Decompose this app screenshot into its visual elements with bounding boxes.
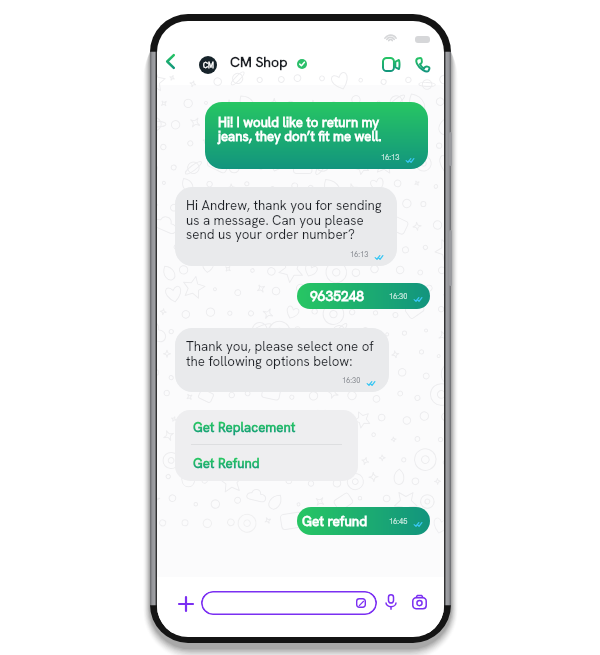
button[interactable]: Camera: [409, 592, 429, 612]
button[interactable]: Hi! I would like to return my jeans, the…: [205, 102, 428, 169]
staticText: CM: [203, 61, 214, 70]
staticText: 16:13: [381, 153, 400, 163]
staticText: Hi Andrew, thank you for sending us a me…: [186, 197, 382, 243]
button[interactable]: Get Refund: [175, 446, 358, 481]
staticText: 16:30: [342, 376, 361, 386]
button[interactable]: Hi Andrew, thank you for sending us a me…: [175, 187, 397, 266]
button[interactable]: Add attachment: [174, 592, 197, 615]
staticText: 16:13: [350, 250, 369, 260]
button[interactable]: Get Replacement: [175, 410, 358, 445]
staticText: Get Refund: [193, 455, 260, 472]
staticText: 16:30: [389, 292, 408, 302]
staticText: Get Replacement: [193, 419, 296, 436]
staticText: 16:45: [389, 517, 408, 527]
staticText: Hi! I would like to return my jeans, the…: [218, 114, 382, 145]
staticText: 9635248: [310, 287, 365, 305]
button[interactable]: Get refund: [297, 507, 430, 535]
button[interactable]: Back: [160, 51, 181, 72]
button[interactable]: Video call: [379, 52, 403, 76]
button[interactable]: Voice message: [381, 592, 400, 611]
staticText: Get refund: [302, 512, 368, 530]
staticText: Thank you, please select one of the foll…: [186, 338, 374, 370]
button[interactable]: [201, 591, 377, 615]
button[interactable]: 9635248: [297, 283, 430, 309]
staticText: CM Shop: [230, 53, 288, 71]
button[interactable]: Thank you, please select one of the foll…: [175, 328, 389, 392]
button[interactable]: Voice call: [410, 52, 434, 76]
